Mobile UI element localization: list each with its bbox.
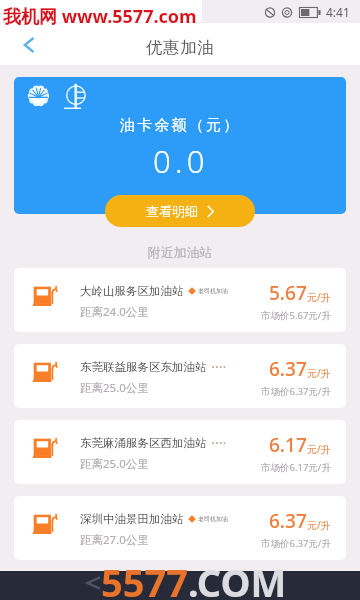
staticText: 距离27.0公里 (80, 532, 149, 548)
staticText: 市场价5.67元/升 (261, 309, 331, 322)
staticText: 油卡余额（元） (120, 116, 241, 135)
staticText: 6.37 (269, 508, 307, 534)
staticText: 东莞麻涌服务区西加油站 (80, 436, 207, 450)
button[interactable]: Back (0, 24, 48, 64)
staticText: 老司机加油 (198, 515, 228, 523)
button[interactable]: 深圳中油景田加油站 (14, 496, 346, 560)
staticText: 元/升 (307, 366, 331, 380)
staticText: 距离24.0公里 (80, 304, 149, 320)
staticText: 6.37 (269, 356, 307, 382)
staticText: 元/升 (307, 518, 331, 532)
staticText: 6.17 (269, 432, 307, 458)
staticText: 市场价6.37元/升 (261, 537, 331, 550)
staticText: 我机网 www.5577.com (3, 4, 197, 29)
staticText: 距离25.0公里 (80, 456, 149, 472)
staticText: 元/升 (307, 442, 331, 456)
staticText: 5577 (101, 556, 188, 600)
staticText: 元/升 (307, 290, 331, 304)
staticText: 优惠加油 (146, 37, 215, 58)
button[interactable]: 东莞麻涌服务区西加油站 (14, 420, 346, 484)
staticText: 5.67 (269, 280, 307, 306)
staticText: 大岭山服务区加油站 (80, 284, 184, 298)
staticText: 查看明细 (146, 203, 198, 219)
staticText: 附近加油站 (0, 244, 360, 260)
staticText: 0.0 (153, 140, 209, 182)
staticText: 4:41 (326, 4, 350, 20)
staticText: 深圳中油景田加油站 (80, 512, 184, 526)
button[interactable]: 东莞联益服务区东加油站 (14, 344, 346, 408)
staticText: 老司机加油 (198, 287, 228, 295)
staticText: .COM (188, 556, 287, 600)
button[interactable]: 大岭山服务区加油站 (14, 268, 346, 332)
staticText: 距离25.0公里 (80, 380, 149, 396)
staticText: 东莞联益服务区东加油站 (80, 360, 207, 374)
staticText: 市场价6.37元/升 (261, 385, 331, 398)
button[interactable]: 查看明细 (105, 195, 255, 227)
staticText: 市场价6.17元/升 (261, 461, 331, 474)
